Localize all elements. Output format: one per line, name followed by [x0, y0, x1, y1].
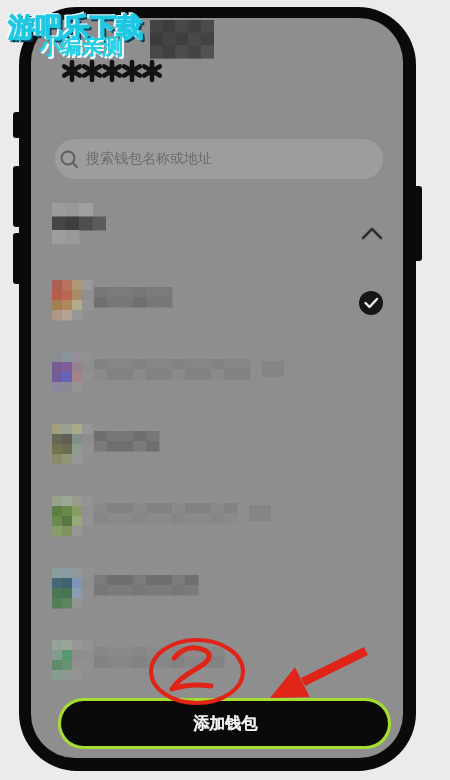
staticText: 搜索钱包名称或地址 — [86, 150, 212, 168]
button[interactable] — [31, 348, 403, 404]
button[interactable] — [31, 636, 403, 692]
button[interactable] — [31, 420, 403, 476]
button[interactable] — [31, 276, 403, 332]
staticText: 游吧乐下载 — [6, 10, 141, 44]
staticText: 游吧乐下载 — [10, 13, 145, 47]
button[interactable] — [31, 492, 403, 548]
staticText: 添加钱包 — [193, 714, 257, 734]
staticText: 小编亲测 — [39, 34, 123, 60]
button[interactable]: 搜索钱包名称或地址 — [55, 139, 383, 179]
button[interactable] — [31, 564, 403, 620]
staticText: 小编亲测 — [41, 36, 125, 62]
staticText: 游吧乐下载 — [8, 11, 143, 45]
button[interactable]: 添加钱包 — [61, 701, 388, 746]
